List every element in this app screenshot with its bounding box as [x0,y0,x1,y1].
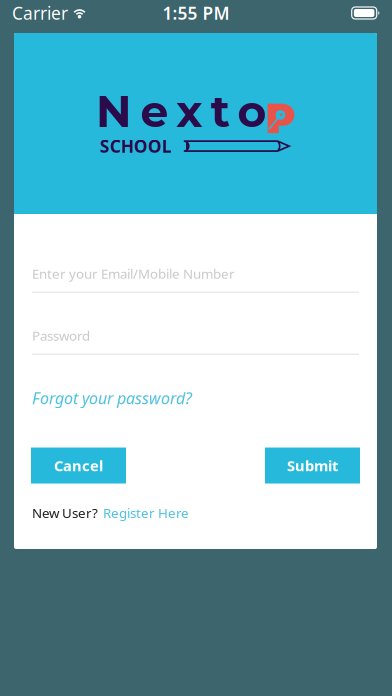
staticText: Enter your Email/Mobile Number [32,265,235,282]
staticText: Cancel [54,456,103,475]
button[interactable]: Forgot your password? [32,387,282,409]
button[interactable]: Register Here [103,504,189,522]
staticText: Forgot your password? [32,387,192,409]
staticText: Carrier [12,1,68,24]
staticText: Submit [287,456,338,475]
staticText: 1:55 PM [162,1,229,24]
staticText: SCHOOL [100,134,172,157]
staticText: Register Here [103,504,189,522]
staticText: New User? [32,504,98,522]
button[interactable]: Cancel [31,447,126,483]
staticText: Nexto [96,84,266,138]
button[interactable]: Submit [265,447,360,483]
staticText: Password [32,327,90,344]
